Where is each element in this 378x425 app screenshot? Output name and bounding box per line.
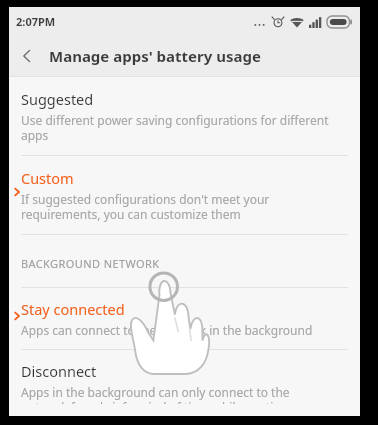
staticText: Apps can connect to the network in the b… (21, 322, 313, 338)
staticText: BACKGROUND NETWORK (21, 256, 160, 271)
staticText: Disconnect (21, 361, 97, 381)
button[interactable]: Suggested (9, 77, 360, 155)
staticText: 2:07PM (16, 14, 56, 29)
staticText: If suggested configurations don't meet y… (21, 191, 270, 222)
staticText: Manage apps' battery usage (49, 46, 261, 66)
staticText: Custom (21, 168, 74, 188)
button[interactable]: Custom (9, 156, 360, 234)
button[interactable]: Disconnect (9, 350, 360, 416)
staticText: Stay connected (21, 299, 125, 319)
staticText: Use different power saving configuration… (21, 112, 329, 143)
button[interactable]: Back (9, 38, 45, 74)
button[interactable]: Stay connected (9, 288, 360, 349)
staticText: Apps in the background can only connect … (21, 384, 309, 404)
staticText: Suggested (21, 89, 94, 109)
